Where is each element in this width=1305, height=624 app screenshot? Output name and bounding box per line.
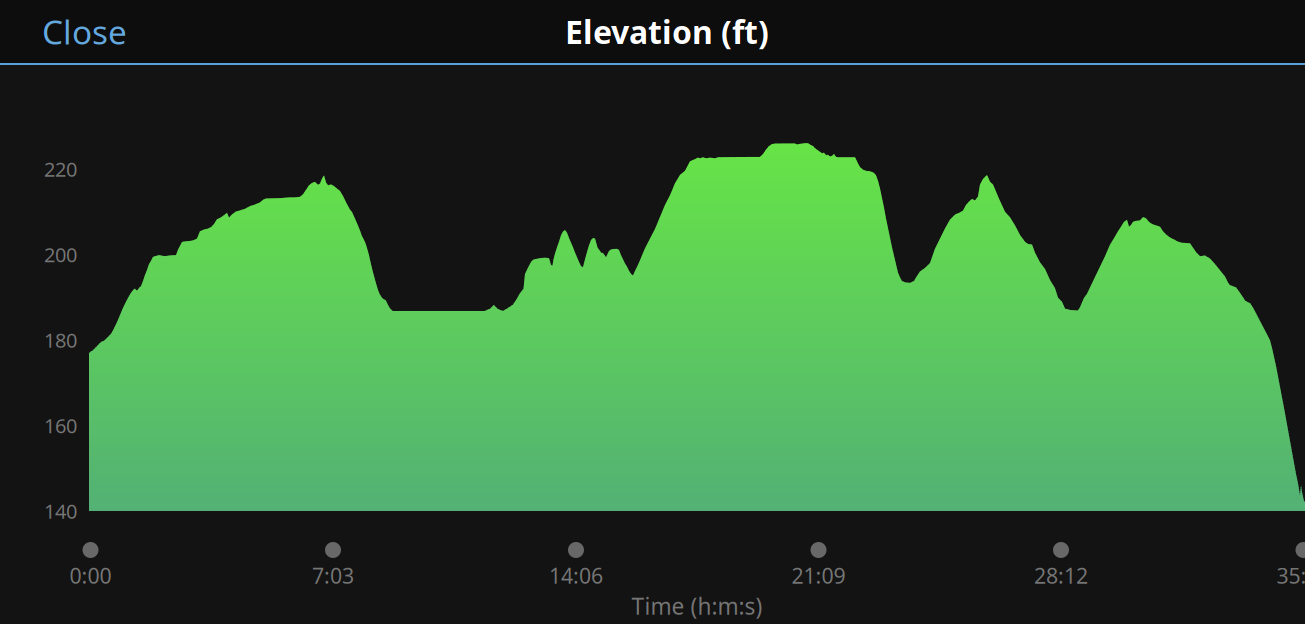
staticText: Time (h:m:s) (631, 591, 762, 621)
staticText: 21:09 (791, 561, 845, 590)
staticText: 180 (44, 327, 77, 353)
staticText: Close (42, 9, 127, 54)
staticText: 140 (44, 498, 77, 524)
staticText: Elevation (ft) (565, 10, 769, 53)
staticText: 0:00 (69, 561, 111, 590)
staticText: 200 (44, 241, 77, 268)
staticText: 28:12 (1034, 561, 1088, 590)
staticText: 7:03 (312, 561, 354, 590)
button[interactable]: Close (42, 8, 152, 55)
staticText: 220 (44, 156, 77, 182)
staticText: 14:06 (549, 561, 603, 590)
staticText: 160 (44, 412, 77, 439)
staticText: 35:15 (1276, 561, 1305, 590)
